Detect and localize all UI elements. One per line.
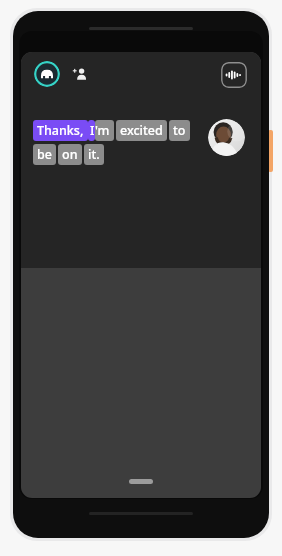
staticText: 'm bbox=[95, 122, 110, 139]
staticText: be bbox=[37, 146, 52, 163]
staticText: Thanks, bbox=[37, 122, 84, 139]
button[interactable]: Profile bbox=[34, 61, 60, 87]
staticText: I bbox=[90, 122, 95, 139]
staticText: it. bbox=[88, 146, 100, 163]
staticText: excited bbox=[120, 122, 163, 139]
staticText: on bbox=[62, 146, 78, 163]
staticText: to bbox=[173, 122, 186, 139]
button[interactable]: Audio captions bbox=[221, 62, 247, 88]
button[interactable]: Add people bbox=[69, 63, 91, 85]
